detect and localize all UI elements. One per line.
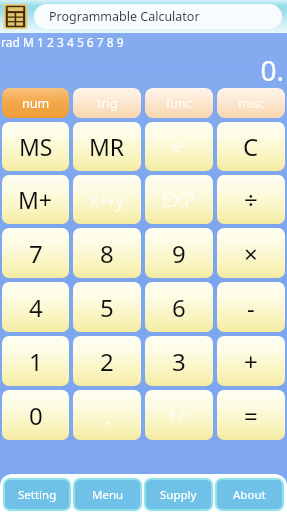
staticText: misc xyxy=(238,95,265,112)
staticText: About xyxy=(233,487,266,503)
staticText: MR xyxy=(89,131,125,162)
button[interactable]: EXP xyxy=(145,175,213,224)
staticText: 0 xyxy=(29,399,43,432)
staticText: Setting xyxy=(18,487,57,503)
button[interactable]: 9 xyxy=(145,228,213,278)
staticText: Menu xyxy=(92,487,124,503)
button[interactable]: trig xyxy=(73,88,141,118)
staticText: 2 xyxy=(100,345,114,378)
button[interactable]: 5 xyxy=(73,282,141,332)
staticText: 1 xyxy=(29,345,43,378)
button[interactable]: Supply xyxy=(146,480,211,509)
staticText: x↔y xyxy=(89,187,125,213)
button[interactable]: func xyxy=(145,88,213,118)
staticText: 9 xyxy=(172,237,186,270)
button[interactable]: M+ xyxy=(2,175,69,224)
button[interactable]: 1 xyxy=(2,336,69,386)
button[interactable]: 3 xyxy=(145,336,213,386)
button[interactable]: About xyxy=(217,480,282,509)
button[interactable]: 6 xyxy=(145,282,213,332)
staticText: C xyxy=(243,130,259,163)
staticText: 7 xyxy=(29,237,43,270)
other: Calculator icon xyxy=(2,3,29,30)
staticText: trig xyxy=(97,95,118,112)
staticText: 5 xyxy=(100,291,114,324)
button[interactable]: +/- xyxy=(145,390,213,440)
staticText: Programmable Calculator xyxy=(49,8,200,25)
staticText: num xyxy=(22,95,50,112)
staticText: 0. xyxy=(260,51,284,85)
button[interactable]: C xyxy=(217,122,285,171)
button[interactable]: Backspace xyxy=(145,122,213,171)
staticText: MS xyxy=(19,131,53,162)
button[interactable]: Setting xyxy=(5,480,69,509)
button[interactable]: MS xyxy=(2,122,69,171)
button[interactable]: - xyxy=(217,282,285,332)
button[interactable]: num xyxy=(2,88,69,118)
staticText: ÷ xyxy=(244,183,258,216)
staticText: 3 xyxy=(172,345,186,378)
button[interactable]: 4 xyxy=(2,282,69,332)
button[interactable]: x↔y xyxy=(73,175,141,224)
button[interactable]: ÷ xyxy=(217,175,285,224)
button[interactable]: + xyxy=(217,336,285,386)
button[interactable]: × xyxy=(217,228,285,278)
button[interactable]: = xyxy=(217,390,285,440)
button[interactable]: 8 xyxy=(73,228,141,278)
button[interactable]: Menu xyxy=(75,480,140,509)
staticText: . xyxy=(104,399,111,432)
staticText: 6 xyxy=(172,291,186,324)
button[interactable]: 7 xyxy=(2,228,69,278)
button[interactable]: . xyxy=(73,390,141,440)
staticText: × xyxy=(244,237,258,270)
staticText: 8 xyxy=(100,237,114,270)
staticText: = xyxy=(244,399,258,432)
staticText: func xyxy=(166,95,192,112)
staticText: EXP xyxy=(162,187,196,213)
staticText: - xyxy=(247,291,255,324)
staticText: M+ xyxy=(18,184,53,215)
button[interactable]: 0 xyxy=(2,390,69,440)
button[interactable]: MR xyxy=(73,122,141,171)
staticText: Supply xyxy=(160,487,197,503)
staticText: rad M 1 2 3 4 5 6 7 8 9 xyxy=(1,34,124,50)
staticText: 4 xyxy=(29,291,43,324)
staticText: + xyxy=(244,345,258,378)
button[interactable]: misc xyxy=(217,88,285,118)
button[interactable]: 2 xyxy=(73,336,141,386)
staticText: +/- xyxy=(167,402,192,428)
